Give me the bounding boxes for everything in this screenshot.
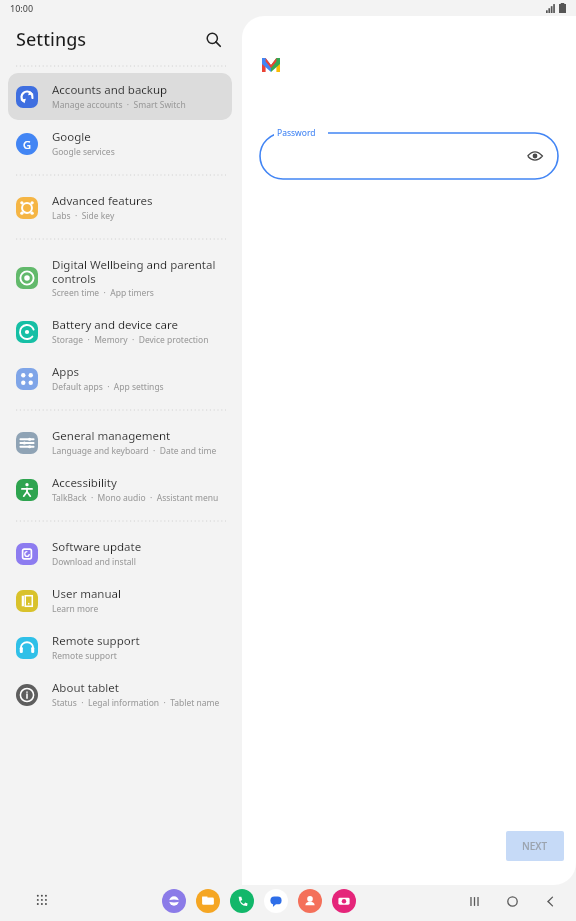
button[interactable]: Search	[200, 26, 226, 52]
button[interactable]: Phone	[230, 889, 254, 913]
button[interactable]: My Files	[196, 889, 220, 913]
staticText: Download and install	[52, 556, 136, 568]
staticText: 10:00	[10, 2, 34, 14]
staticText: General management	[52, 428, 171, 444]
button[interactable]: Software update	[8, 530, 232, 577]
button[interactable]: G	[8, 120, 232, 167]
staticText: TalkBack · Mono audio · Assistant menu	[52, 492, 219, 504]
button[interactable]: Apps	[30, 888, 56, 914]
button[interactable]: Advanced features	[8, 184, 232, 231]
staticText: About tablet	[52, 680, 119, 696]
staticText: Password	[277, 127, 316, 139]
button[interactable]: About tablet	[8, 671, 232, 718]
staticText: User manual	[52, 586, 121, 602]
staticText: NEXT	[522, 839, 548, 853]
staticText: Default apps · App settings	[52, 381, 164, 393]
staticText: Google services	[52, 146, 115, 158]
button[interactable]: Recents	[462, 889, 486, 913]
staticText: Software update	[52, 539, 142, 555]
button[interactable]: Accounts and backup	[8, 73, 232, 120]
button[interactable]: Camera	[332, 889, 356, 913]
staticText: Learn more	[52, 603, 99, 615]
staticText: Apps	[52, 364, 80, 380]
button[interactable]: Password	[260, 133, 558, 179]
button[interactable]: NEXT	[506, 831, 564, 861]
button[interactable]: Remote support	[8, 624, 232, 671]
button[interactable]: Internet	[162, 889, 186, 913]
staticText: Settings	[16, 27, 87, 52]
button[interactable]: Digital Wellbeing and parental controls	[8, 248, 232, 308]
button[interactable]: Apps	[8, 355, 232, 402]
button[interactable]: Back	[538, 889, 562, 913]
staticText: Storage · Memory · Device protection	[52, 334, 209, 346]
staticText: Labs · Side key	[52, 210, 115, 222]
button[interactable]: Battery and device care	[8, 308, 232, 355]
staticText: Accessibility	[52, 475, 117, 491]
staticText: Screen time · App timers	[52, 287, 154, 299]
button[interactable]: Accessibility	[8, 466, 232, 513]
staticText: Advanced features	[52, 193, 153, 209]
button[interactable]: User manual	[8, 577, 232, 624]
button[interactable]: Contacts	[298, 889, 322, 913]
button[interactable]: Show password	[524, 145, 546, 167]
staticText: Battery and device care	[52, 317, 179, 333]
staticText: Remote support	[52, 633, 140, 649]
button[interactable]: Home	[500, 889, 524, 913]
staticText: Remote support	[52, 650, 117, 662]
staticText: Accounts and backup	[52, 82, 168, 98]
button[interactable]: Messages	[264, 889, 288, 913]
staticText: Digital Wellbeing and parental controls	[52, 257, 224, 286]
button[interactable]: General management	[8, 419, 232, 466]
staticText: G	[23, 137, 31, 152]
staticText: Manage accounts · Smart Switch	[52, 99, 186, 111]
staticText: Google	[52, 129, 91, 145]
staticText: Status · Legal information · Tablet name	[52, 697, 220, 709]
staticText: Language and keyboard · Date and time	[52, 445, 217, 457]
